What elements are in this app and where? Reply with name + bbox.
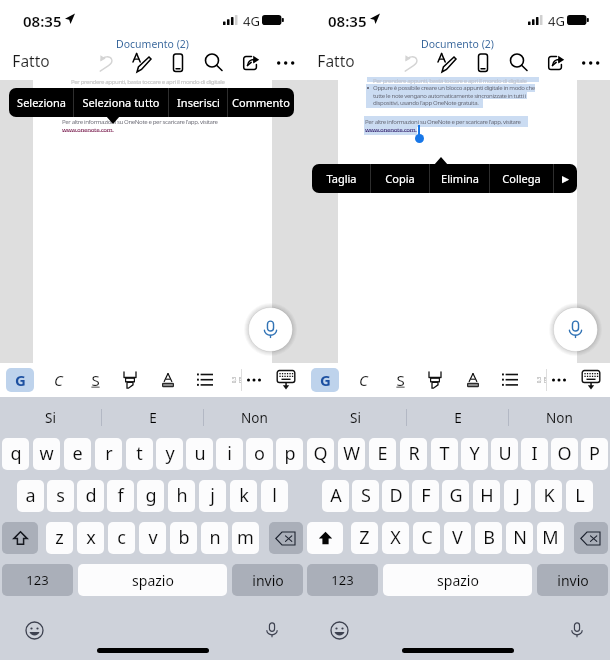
button[interactable]: d	[77, 480, 104, 512]
button[interactable]: u	[186, 438, 213, 470]
button[interactable]: J	[504, 480, 531, 512]
button[interactable]: Si	[305, 397, 406, 438]
button[interactable]: t	[126, 438, 153, 470]
button[interactable]: l	[261, 480, 288, 512]
button[interactable]: Font color	[154, 368, 182, 392]
button[interactable]: Phone	[166, 51, 190, 75]
button[interactable]: B	[475, 522, 502, 554]
button[interactable]: Copia	[371, 164, 429, 193]
button[interactable]: z	[46, 522, 73, 554]
button[interactable]: Underline	[81, 368, 109, 392]
button[interactable]: i	[216, 438, 243, 470]
button[interactable]: X	[382, 522, 409, 554]
button[interactable]: Non	[509, 397, 610, 438]
button[interactable]: 123	[307, 564, 378, 596]
button[interactable]: spazio	[78, 564, 227, 596]
button[interactable]: Si	[0, 397, 101, 438]
button[interactable]: O	[551, 438, 578, 470]
button[interactable]: E	[407, 397, 508, 438]
button[interactable]: Collega	[490, 164, 553, 193]
button[interactable]: Shift	[307, 522, 343, 554]
button[interactable]: b	[170, 522, 197, 554]
button[interactable]: Share	[239, 51, 263, 75]
button[interactable]: g	[137, 480, 164, 512]
button[interactable]: Dictation	[261, 619, 283, 641]
button[interactable]: Bullet list	[191, 368, 219, 392]
button[interactable]: G	[442, 480, 469, 512]
button[interactable]: K	[535, 480, 562, 512]
button[interactable]: Commento	[228, 88, 294, 117]
button[interactable]: W	[338, 438, 365, 470]
button[interactable]: h	[168, 480, 195, 512]
button[interactable]: Share	[544, 51, 568, 75]
button[interactable]: Bullet list	[496, 368, 524, 392]
button[interactable]: f	[107, 480, 134, 512]
button[interactable]: n	[201, 522, 228, 554]
button[interactable]: N	[506, 522, 533, 554]
button[interactable]: Y	[461, 438, 488, 470]
button[interactable]: Seleziona tutto	[74, 88, 168, 117]
button[interactable]: w	[33, 438, 60, 470]
button[interactable]: A	[322, 480, 349, 512]
button[interactable]: k	[230, 480, 257, 512]
button[interactable]: Fatto	[314, 50, 358, 71]
button[interactable]: E	[369, 438, 396, 470]
button[interactable]: Q	[307, 438, 334, 470]
button[interactable]: H	[473, 480, 500, 512]
button[interactable]: Hide keyboard	[272, 368, 300, 392]
button[interactable]: r	[95, 438, 122, 470]
button[interactable]: Emoji	[328, 619, 350, 641]
button[interactable]: Elimina	[430, 164, 489, 193]
button[interactable]: U	[491, 438, 518, 470]
button[interactable]: More formatting	[545, 368, 573, 392]
button[interactable]: a	[17, 480, 44, 512]
button[interactable]: c	[108, 522, 135, 554]
button[interactable]: Non	[204, 397, 305, 438]
button[interactable]: e	[64, 438, 91, 470]
button[interactable]: Undo	[399, 51, 423, 75]
button[interactable]: q	[2, 438, 29, 470]
button[interactable]: P	[581, 438, 608, 470]
button[interactable]: v	[139, 522, 166, 554]
button[interactable]: Phone	[471, 51, 495, 75]
button[interactable]: invio	[537, 564, 608, 596]
button[interactable]: Markup	[130, 51, 154, 75]
button[interactable]: Search	[202, 51, 226, 75]
button[interactable]: Search	[507, 51, 531, 75]
button[interactable]: m	[232, 522, 259, 554]
button[interactable]: V	[444, 522, 471, 554]
button[interactable]: Fatto	[9, 50, 53, 71]
button[interactable]: R	[400, 438, 427, 470]
button[interactable]: Z	[351, 522, 378, 554]
button[interactable]: Backspace	[574, 522, 608, 554]
button[interactable]: Highlight	[116, 368, 144, 392]
button[interactable]: y	[156, 438, 183, 470]
button[interactable]: s	[47, 480, 74, 512]
button[interactable]: G	[311, 368, 339, 392]
button[interactable]: Undo	[94, 51, 118, 75]
button[interactable]: D	[382, 480, 409, 512]
button[interactable]: Shift	[2, 522, 38, 554]
button[interactable]: Dictate	[549, 303, 602, 356]
button[interactable]: Seleziona	[9, 88, 73, 117]
button[interactable]: F	[412, 480, 439, 512]
button[interactable]: More formatting	[240, 368, 268, 392]
button[interactable]: Inserisci	[169, 88, 227, 117]
button[interactable]: Font color	[459, 368, 487, 392]
button[interactable]: Highlight	[421, 368, 449, 392]
button[interactable]: G	[6, 368, 34, 392]
button[interactable]: M	[537, 522, 564, 554]
button[interactable]: Underline	[386, 368, 414, 392]
button[interactable]: Backspace	[269, 522, 303, 554]
button[interactable]: Italic	[349, 368, 377, 392]
button[interactable]: spazio	[383, 564, 532, 596]
button[interactable]: Dictate	[244, 303, 297, 356]
button[interactable]: o	[246, 438, 273, 470]
button[interactable]: j	[199, 480, 226, 512]
button[interactable]: 123	[2, 564, 73, 596]
button[interactable]: T	[431, 438, 458, 470]
button[interactable]: L	[566, 480, 593, 512]
button[interactable]: x	[77, 522, 104, 554]
button[interactable]: S	[352, 480, 379, 512]
button[interactable]: C	[413, 522, 440, 554]
